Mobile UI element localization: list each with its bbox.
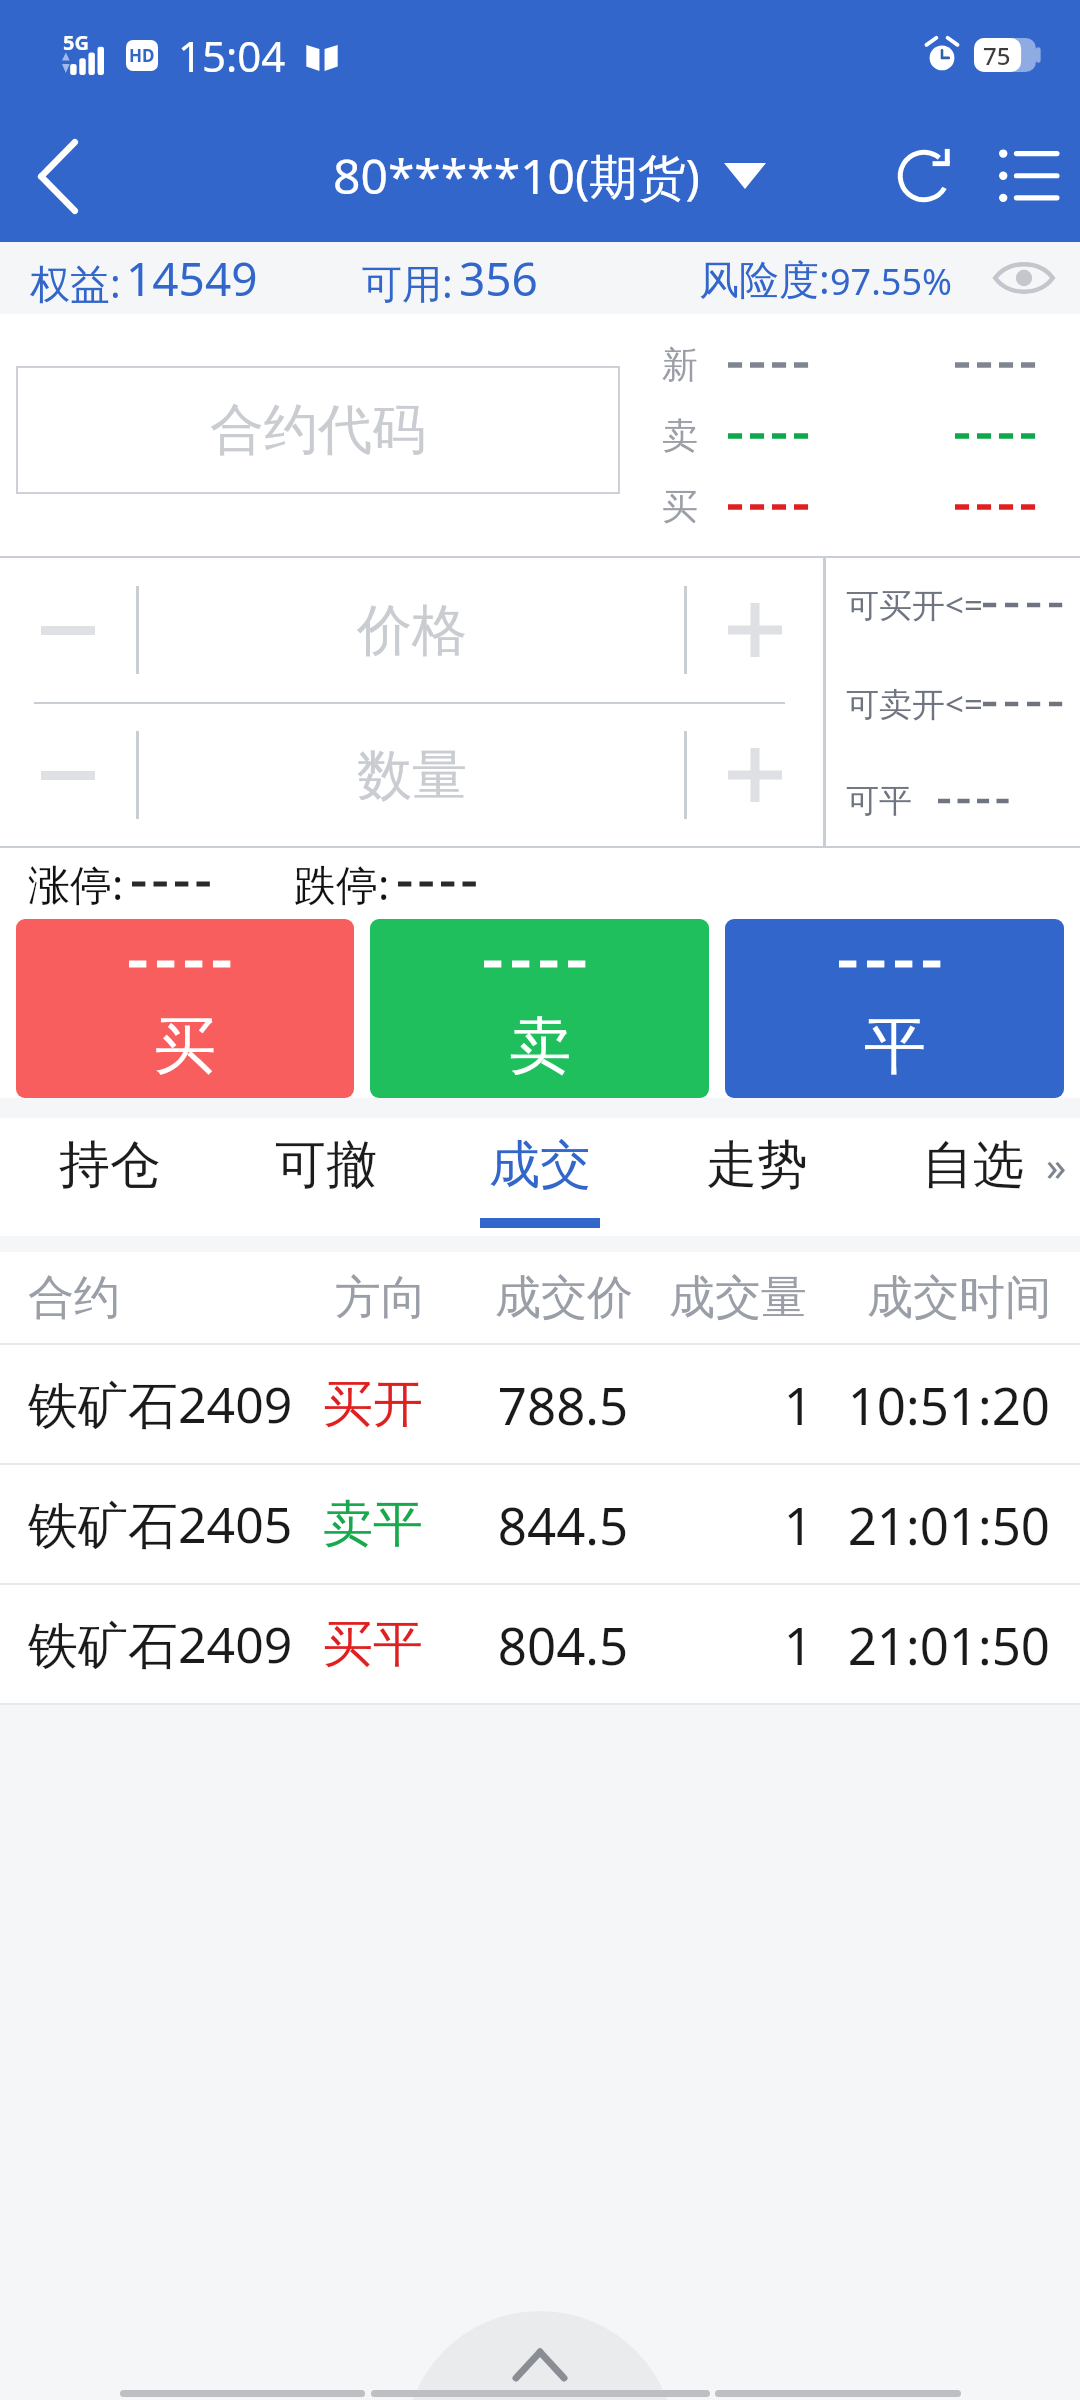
button[interactable]: Menu xyxy=(976,110,1080,242)
button[interactable]: Refresh xyxy=(872,110,976,242)
staticText: 跌停: xyxy=(294,855,390,912)
staticText: » xyxy=(1046,1138,1067,1192)
staticText: 10:51:20 xyxy=(813,1370,1050,1439)
staticText: 铁矿石2405 xyxy=(28,1490,320,1558)
staticText: 价格 xyxy=(357,596,467,665)
staticText: 买 xyxy=(154,1007,216,1085)
button[interactable]: 可撤 xyxy=(219,1118,433,1236)
staticText: 持仓 xyxy=(59,1133,161,1197)
button[interactable]: Toggle visibility xyxy=(968,242,1080,314)
staticText: 14549 xyxy=(126,247,258,310)
button[interactable]: 成交 xyxy=(433,1118,647,1236)
button[interactable]: Increase 数量 xyxy=(687,704,823,846)
staticText: 可用: xyxy=(362,255,453,310)
button[interactable]: 买 xyxy=(16,919,354,1098)
button[interactable]: More tabs xyxy=(1032,1118,1080,1236)
staticText: 可卖开<= xyxy=(846,681,983,726)
staticText: 80*****10(期货) xyxy=(333,143,700,209)
staticText: 卖 xyxy=(662,413,698,458)
button[interactable]: 走势 xyxy=(650,1118,864,1236)
staticText: 成交量 xyxy=(669,1269,807,1327)
staticText: 356 xyxy=(459,247,538,310)
staticText: 可撤 xyxy=(275,1133,377,1197)
button[interactable]: 合约代码 xyxy=(16,366,620,494)
staticText: 成交 xyxy=(489,1133,591,1197)
staticText: 合约代码 xyxy=(210,396,426,464)
button[interactable]: 自选 xyxy=(866,1118,1080,1236)
staticText: 买平 xyxy=(320,1613,426,1676)
button[interactable]: 平 xyxy=(725,919,1064,1098)
button[interactable]: Back xyxy=(0,110,116,242)
staticText: 21:01:50 xyxy=(813,1490,1050,1559)
staticText: 新 xyxy=(662,342,698,387)
staticText: 自选 xyxy=(922,1133,1024,1197)
staticText: 可平 xyxy=(846,780,912,822)
staticText: HD xyxy=(129,44,155,67)
staticText: 788.5 xyxy=(426,1370,700,1439)
button[interactable]: Expand xyxy=(405,2311,676,2400)
button[interactable]: 80*****10(期货) xyxy=(333,143,766,209)
staticText: 买开 xyxy=(320,1373,426,1436)
staticText: 方向 xyxy=(335,1269,427,1327)
staticText: 可买开<= xyxy=(846,582,983,627)
staticText: 844.5 xyxy=(426,1490,700,1559)
button[interactable]: 铁矿石2409 xyxy=(28,1585,1050,1703)
staticText: 铁矿石2409 xyxy=(28,1370,320,1438)
staticText: 1 xyxy=(700,1490,813,1559)
staticText: 5G xyxy=(63,29,89,56)
staticText: 1 xyxy=(700,1370,813,1439)
button[interactable]: 铁矿石2409 xyxy=(28,1345,1050,1463)
staticText: 平 xyxy=(864,1007,926,1085)
button[interactable]: Decrease 数量 xyxy=(0,704,136,846)
staticText: 走势 xyxy=(706,1133,808,1197)
button[interactable]: Increase 价格 xyxy=(687,558,823,702)
staticText: 97.55% xyxy=(830,257,952,306)
staticText: 成交时间 xyxy=(867,1269,1051,1327)
staticText: 卖平 xyxy=(320,1493,426,1556)
staticText: 成交价 xyxy=(495,1269,633,1327)
staticText: 合约 xyxy=(28,1269,120,1327)
staticText: 权益: xyxy=(30,255,121,310)
staticText: 风险度: xyxy=(699,251,830,306)
button[interactable]: Decrease 价格 xyxy=(0,558,136,702)
button[interactable]: 卖 xyxy=(370,919,709,1098)
staticText: 21:01:50 xyxy=(813,1610,1050,1679)
staticText: 铁矿石2409 xyxy=(28,1610,320,1678)
staticText: 数量 xyxy=(357,741,467,810)
button[interactable]: 铁矿石2405 xyxy=(28,1465,1050,1583)
staticText: 804.5 xyxy=(426,1610,700,1679)
staticText: 15:04 xyxy=(178,27,286,84)
staticText: 买 xyxy=(662,484,698,529)
staticText: 卖 xyxy=(509,1007,571,1085)
staticText: 75 xyxy=(983,39,1011,72)
staticText: 涨停: xyxy=(28,855,124,912)
staticText: 1 xyxy=(700,1610,813,1679)
button[interactable]: 持仓 xyxy=(3,1118,217,1236)
